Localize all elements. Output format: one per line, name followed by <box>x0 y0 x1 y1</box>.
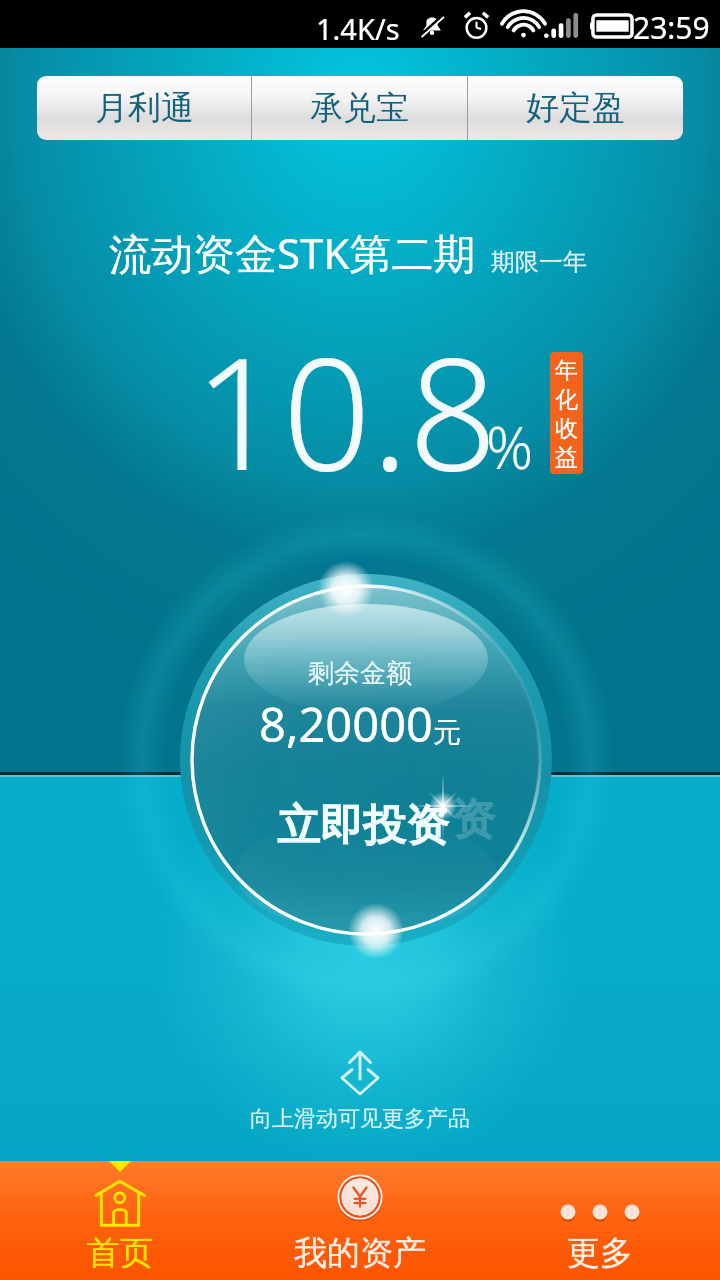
staticText: % <box>486 407 534 486</box>
staticText: 好定盈 <box>526 87 625 129</box>
staticText: 我的资产 <box>294 1232 426 1274</box>
staticText: 承兑宝 <box>310 87 409 129</box>
staticText: 剩余金额 <box>308 657 412 690</box>
staticText: 23:59 <box>633 7 710 48</box>
button[interactable]: More <box>480 1161 720 1280</box>
staticText: 期限一年 <box>491 247 587 277</box>
staticText: 1.4K/s <box>316 9 400 48</box>
staticText: 月利通 <box>95 87 194 129</box>
staticText: 年 化 收 益 <box>555 356 578 471</box>
staticText: 流动资金STK第二期 <box>109 224 476 281</box>
staticText: 向上滑动可见更多产品 <box>250 1105 470 1133</box>
staticText: 更多 <box>567 1232 633 1274</box>
staticText: 首页 <box>87 1232 153 1274</box>
staticText: 10.8 <box>194 304 498 515</box>
staticText: 立即投资 <box>277 799 449 853</box>
button[interactable]: My assets <box>240 1161 480 1280</box>
button[interactable]: 好定盈 <box>468 76 683 140</box>
button[interactable]: 承兑宝 <box>252 76 467 140</box>
staticText: 8,20000 <box>259 692 433 756</box>
button[interactable]: 月利通 <box>37 76 251 140</box>
staticText: 元 <box>433 715 461 750</box>
staticText: 资 <box>452 793 495 847</box>
button[interactable]: 立即投资 <box>180 771 546 881</box>
button[interactable]: Home <box>0 1161 240 1280</box>
